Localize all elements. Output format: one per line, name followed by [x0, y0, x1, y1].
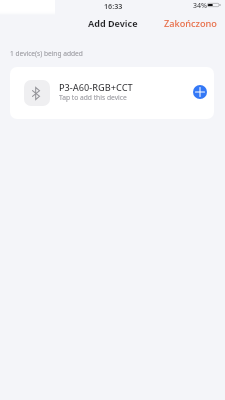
staticText: 16:33	[104, 1, 123, 11]
staticText: 1 device(s) being added	[10, 49, 83, 58]
button[interactable]: Bluetooth	[10, 67, 214, 119]
other: Bluetooth	[32, 87, 40, 100]
staticText: Add Device	[88, 17, 138, 29]
staticText: 34%	[193, 1, 207, 11]
staticText: Zakończono	[164, 17, 217, 30]
staticText: P3-A60-RGB+CCT	[59, 81, 133, 94]
staticText: Tap to add this device	[59, 93, 127, 102]
other: Battery 34 percent	[207, 3, 221, 7]
button[interactable]: Add this device	[193, 85, 207, 99]
button[interactable]: Zakończono	[156, 13, 225, 34]
